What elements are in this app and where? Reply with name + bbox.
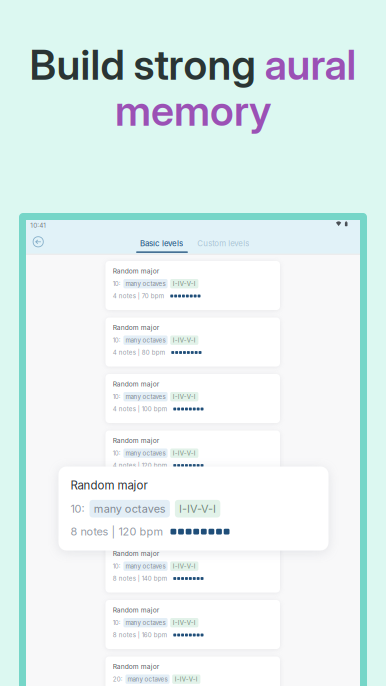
staticText: Custom levels bbox=[197, 239, 249, 248]
staticText: 10: bbox=[113, 280, 121, 287]
staticText: 4 notes | 120 bpm bbox=[113, 462, 167, 469]
staticText: many octaves bbox=[125, 506, 165, 513]
button[interactable]: Custom levels bbox=[197, 239, 253, 248]
staticText: 10:41 bbox=[30, 222, 46, 229]
staticText: I-IV-V-I bbox=[173, 619, 196, 626]
button[interactable]: Random major bbox=[105, 600, 280, 649]
staticText: Random major bbox=[113, 380, 160, 388]
staticText: I-IV-V-I bbox=[173, 449, 196, 457]
staticText: Random major bbox=[113, 606, 160, 614]
staticText: Build strong bbox=[29, 40, 264, 90]
staticText: many octaves bbox=[127, 675, 167, 683]
staticText: many octaves bbox=[125, 449, 165, 457]
staticText: 20: bbox=[113, 675, 123, 683]
staticText: 10: bbox=[113, 336, 121, 344]
staticText: 4 notes | 80 bpm bbox=[113, 349, 165, 356]
staticText: many octaves bbox=[125, 393, 165, 400]
staticText: 10: bbox=[113, 393, 121, 400]
staticText: 10: bbox=[113, 449, 121, 457]
button[interactable]: Random major bbox=[105, 656, 280, 686]
staticText: 10: bbox=[70, 502, 84, 515]
staticText: 4 notes | 100 bpm bbox=[113, 405, 167, 413]
staticText: 10: bbox=[113, 506, 121, 513]
staticText: many octaves bbox=[125, 619, 165, 626]
button[interactable]: Random major bbox=[105, 261, 280, 310]
staticText: 4 notes | 70 bpm bbox=[113, 292, 164, 300]
staticText: 10: bbox=[113, 619, 121, 626]
staticText: I-IV-V-I bbox=[173, 562, 196, 570]
staticText: memory bbox=[115, 86, 271, 136]
staticText: 8 notes | 120 bpm bbox=[70, 525, 163, 538]
button[interactable]: Back bbox=[30, 234, 46, 250]
button[interactable]: Random major bbox=[58, 466, 328, 550]
staticText: Random major bbox=[113, 493, 160, 501]
staticText: many octaves bbox=[94, 502, 166, 515]
staticText: Random major bbox=[113, 662, 160, 671]
staticText: Random major bbox=[113, 267, 160, 275]
staticText: Basic levels bbox=[140, 239, 183, 248]
staticText: Random major bbox=[113, 549, 160, 558]
button[interactable]: Random major bbox=[105, 374, 280, 423]
button[interactable]: Basic levels bbox=[140, 239, 186, 248]
staticText: many octaves bbox=[125, 336, 165, 344]
staticText: Random major bbox=[113, 323, 160, 332]
staticText: Random major bbox=[70, 478, 147, 492]
staticText: aural bbox=[264, 40, 356, 90]
staticText: Random major bbox=[113, 436, 160, 445]
button[interactable]: Random major bbox=[105, 317, 280, 366]
button[interactable]: Random major bbox=[105, 487, 280, 536]
button[interactable]: Random major bbox=[105, 543, 280, 592]
staticText: 10: bbox=[113, 562, 121, 570]
staticText: I-IV-V-I bbox=[175, 675, 198, 683]
staticText: many octaves bbox=[125, 562, 165, 570]
staticText: I-IV-V-I bbox=[179, 502, 216, 515]
staticText: 8 notes | 160 bpm bbox=[113, 631, 167, 639]
button[interactable]: Random major bbox=[105, 430, 280, 479]
staticText: 8 notes | 140 bpm bbox=[113, 575, 167, 582]
staticText: I-IV-V-I bbox=[173, 506, 196, 513]
staticText: I-IV-V-I bbox=[173, 393, 196, 400]
staticText: I-IV-V-I bbox=[173, 280, 196, 287]
staticText: I-IV-V-I bbox=[173, 336, 196, 344]
staticText: many octaves bbox=[125, 280, 165, 287]
